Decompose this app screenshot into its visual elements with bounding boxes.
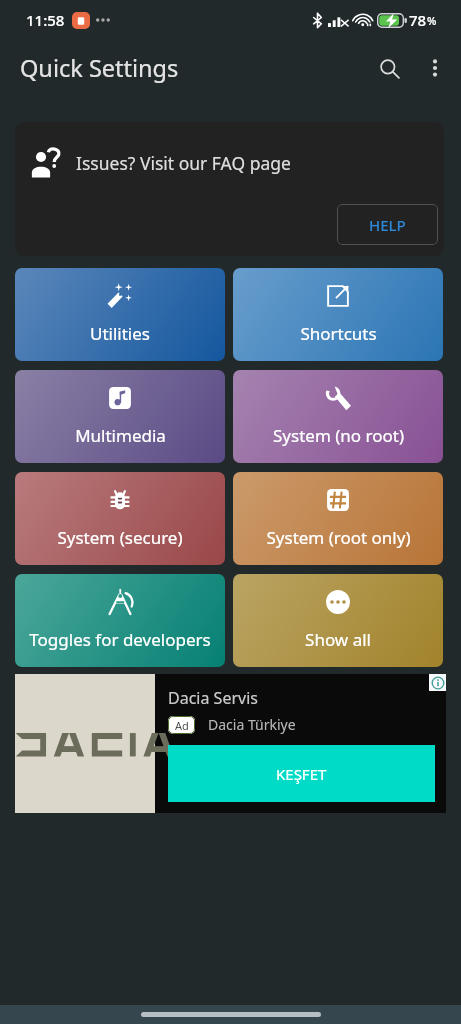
staticText: 11:58 [26, 10, 65, 30]
staticText: 78 [409, 10, 427, 30]
button[interactable]: Issues? Visit our FAQ page [15, 122, 444, 256]
staticText: Utilities [90, 322, 150, 345]
button[interactable]: HELP [337, 204, 438, 245]
staticText: Dacia Türkiye [208, 715, 296, 734]
staticText: Quick Settings [20, 52, 179, 84]
button[interactable]: Show all [233, 574, 443, 667]
staticText: Issues? Visit our FAQ page [76, 151, 291, 175]
staticText: Multimedia [75, 424, 166, 447]
staticText: Dacia Servis [168, 687, 258, 709]
button[interactable]: Multimedia [15, 370, 225, 463]
button[interactable]: Search [366, 45, 412, 91]
staticText: System (secure) [57, 526, 183, 549]
button[interactable]: Shortcuts [233, 268, 443, 361]
button[interactable]: System (root only) [233, 472, 443, 565]
staticText: Ad [175, 718, 189, 733]
button[interactable]: Dacia Servis [15, 674, 446, 813]
button[interactable]: System (secure) [15, 472, 225, 565]
staticText: Toggles for developers [29, 628, 211, 651]
staticText: Shortcuts [300, 322, 377, 345]
other: Ad info [429, 674, 446, 691]
button[interactable]: More options [412, 45, 458, 91]
button[interactable]: System (no root) [233, 370, 443, 463]
staticText: Show all [305, 628, 371, 651]
staticText: KEŞFET [276, 764, 327, 784]
staticText: System (root only) [266, 526, 411, 549]
button[interactable]: Utilities [15, 268, 225, 361]
staticText: System (no root) [273, 424, 404, 447]
staticText: % [427, 13, 437, 28]
staticText: HELP [369, 215, 406, 235]
button[interactable]: Toggles for developers [15, 574, 225, 667]
button[interactable]: KEŞFET [168, 745, 435, 802]
